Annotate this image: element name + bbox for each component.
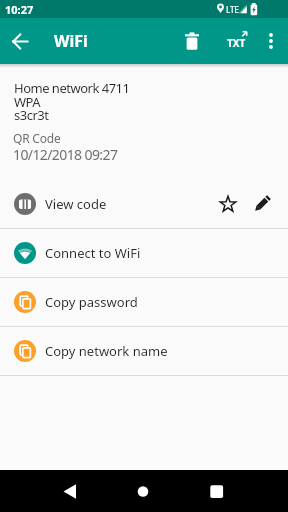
staticText: Connect to WiFi [45,244,288,262]
button[interactable]: Connect to WiFi [0,229,288,277]
staticText: 10/12/2018 09:27 [13,145,118,164]
staticText: 10:27 [5,2,34,17]
staticText: LTE [226,4,239,15]
staticText: View code [45,195,213,213]
button[interactable] [256,18,286,64]
staticText: Copy password [45,293,288,311]
staticText: Copy network name [45,342,288,360]
staticText: WiFi [54,30,88,52]
button[interactable] [213,180,239,228]
staticText: QR Code [13,130,61,146]
button[interactable] [195,470,243,512]
button[interactable]: TXT [218,18,254,64]
button[interactable] [176,18,208,64]
button[interactable] [6,27,34,55]
staticText: TXT [227,36,246,50]
button[interactable]: View code [0,180,288,228]
button[interactable]: Copy password [0,278,288,326]
button[interactable]: Copy network name [0,327,288,375]
button[interactable] [120,470,168,512]
staticText: Home network 4711 WPA s3cr3t [14,79,130,123]
button[interactable] [249,180,275,228]
button[interactable] [45,470,93,512]
